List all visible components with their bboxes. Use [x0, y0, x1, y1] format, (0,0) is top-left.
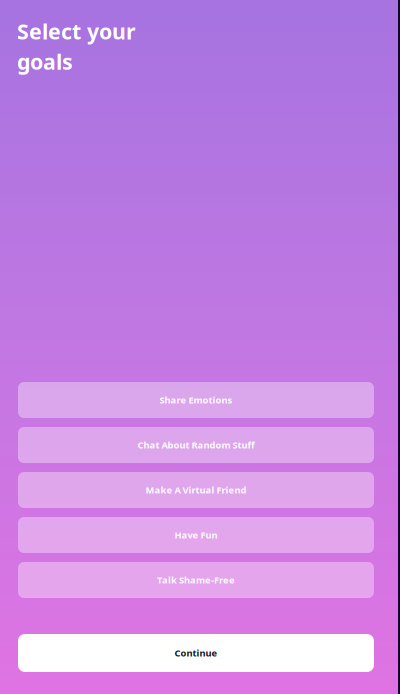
button[interactable]: Make A Virtual Friend: [18, 472, 374, 508]
staticText: Make A Virtual Friend: [145, 484, 246, 496]
staticText: Have Fun: [174, 529, 217, 541]
staticText: goals: [17, 47, 73, 76]
button[interactable]: Continue: [18, 634, 374, 672]
staticText: Select your: [17, 17, 136, 45]
staticText: Share Emotions: [159, 394, 232, 406]
staticText: Continue: [174, 647, 217, 659]
button[interactable]: Talk Shame-Free: [18, 562, 374, 598]
button[interactable]: Have Fun: [18, 517, 374, 553]
button[interactable]: Share Emotions: [18, 382, 374, 418]
staticText: Talk Shame-Free: [157, 574, 235, 586]
staticText: Chat About Random Stuff: [137, 439, 254, 451]
button[interactable]: Chat About Random Stuff: [18, 427, 374, 463]
